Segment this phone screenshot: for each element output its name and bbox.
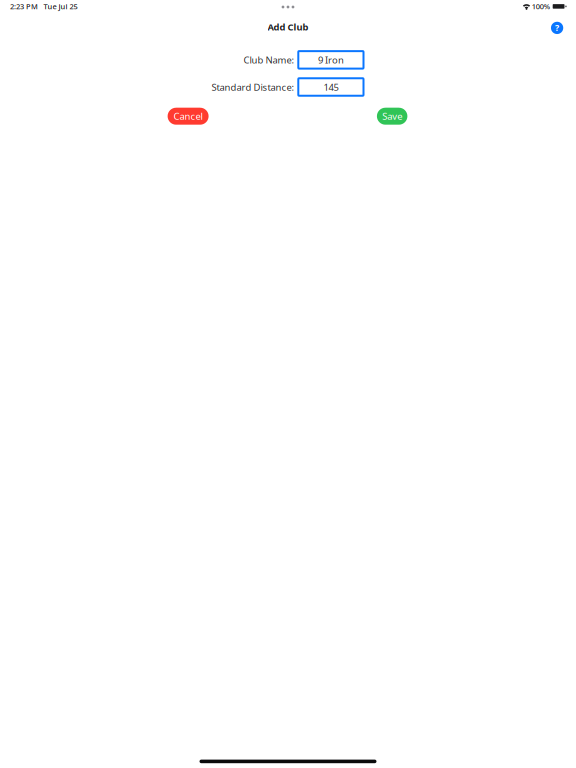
staticText: Club Name:: [243, 53, 294, 66]
button[interactable]: Help: [544, 15, 570, 41]
staticText: 9 Iron: [318, 53, 344, 66]
staticText: Cancel: [174, 110, 203, 123]
staticText: 2:23 PM: [10, 1, 38, 11]
staticText: Add Club: [267, 21, 308, 33]
staticText: 100%: [532, 1, 550, 11]
staticText: ?: [555, 22, 559, 34]
button[interactable]: Cancel: [168, 108, 209, 125]
staticText: Save: [382, 110, 402, 123]
staticText: Tue Jul 25: [43, 1, 77, 11]
staticText: 145: [323, 81, 338, 93]
button[interactable]: Save: [377, 108, 407, 125]
staticText: Standard Distance:: [211, 81, 294, 93]
